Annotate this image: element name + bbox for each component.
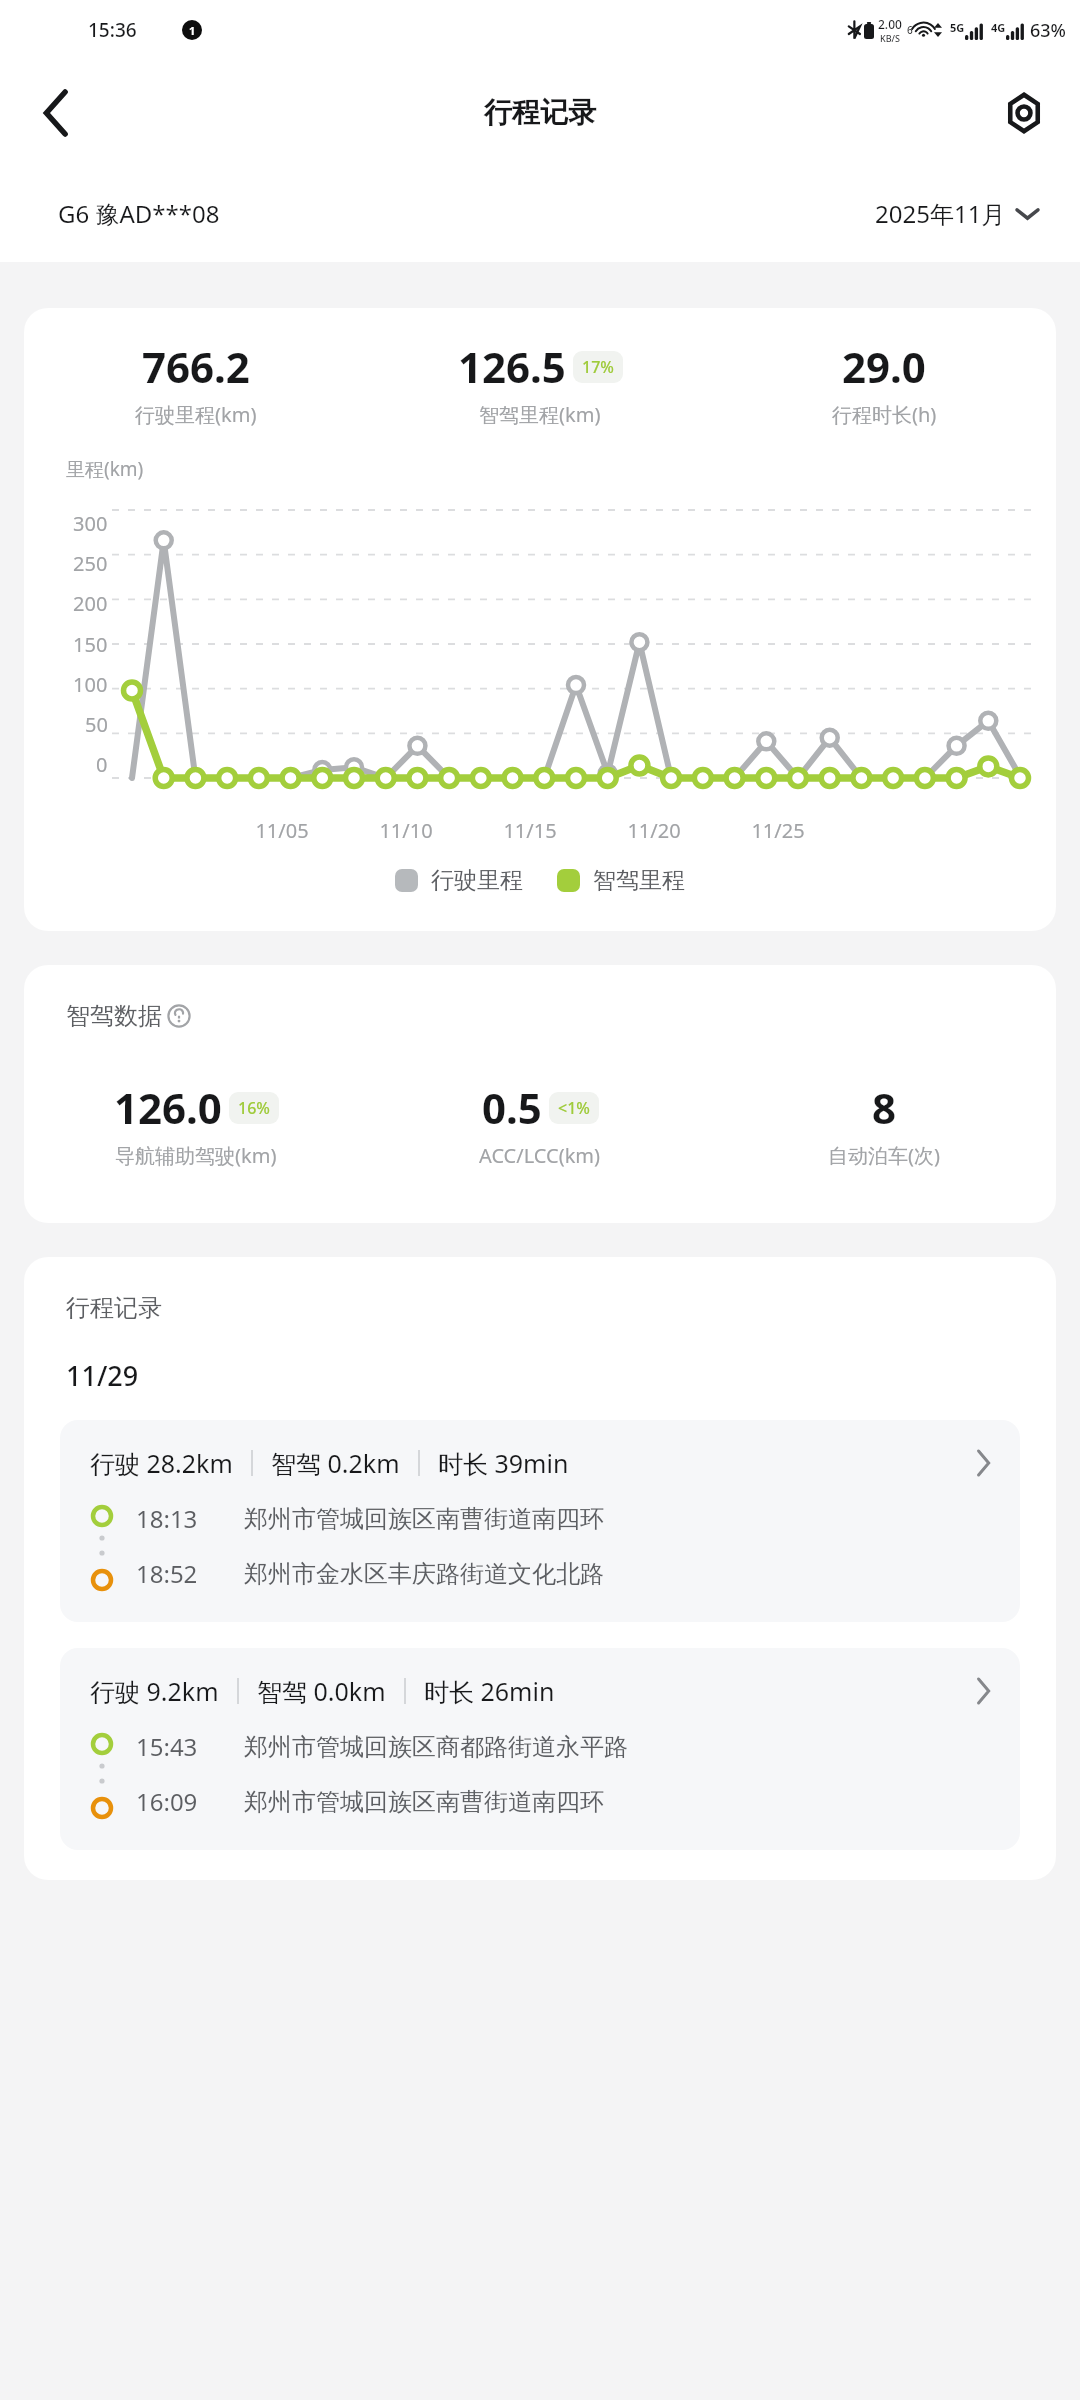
staticText: 0.5 (482, 1079, 542, 1136)
staticText: 100 (73, 671, 108, 698)
staticText: 行驶里程 (431, 866, 523, 895)
staticText: 150 (73, 631, 108, 658)
staticText: 250 (73, 550, 108, 577)
staticText: 29.0 (842, 338, 926, 395)
staticText: 50 (85, 711, 108, 738)
staticText: 8 (872, 1079, 897, 1136)
staticText: 126.0 (114, 1079, 222, 1136)
staticText: 11/05 (220, 817, 344, 844)
staticText: 11/20 (592, 817, 716, 844)
staticText: 15:43 (136, 1730, 244, 1763)
staticText: 6 (907, 23, 913, 37)
staticText: 郑州市管城回族区南曹街道南四环 (244, 1787, 604, 1817)
staticText: 4G (991, 20, 1006, 35)
staticText: 11/25 (716, 817, 840, 844)
button[interactable]: 行驶 28.2km (60, 1420, 1020, 1622)
staticText: 18:13 (136, 1502, 244, 1535)
button[interactable]: 智驾数据 (66, 1001, 191, 1031)
staticText: 2.00 (878, 16, 902, 32)
staticText: 智驾里程 (593, 866, 685, 895)
staticText: 5G (950, 20, 965, 35)
button[interactable]: 2025年11月 (875, 197, 1038, 230)
staticText: 0 (96, 751, 108, 778)
staticText: 行程记录 (484, 95, 596, 130)
button[interactable]: 智驾里程 (557, 866, 685, 895)
staticText: 行程时长(h) (832, 401, 937, 428)
staticText: G6 豫AD***08 (58, 197, 220, 230)
staticText: 行驶 28.2km (90, 1446, 233, 1480)
staticText: 16% (238, 1097, 270, 1119)
staticText: 郑州市管城回族区商都路街道永平路 (244, 1732, 628, 1762)
staticText: 16:09 (136, 1785, 244, 1818)
staticText: <1% (558, 1097, 590, 1119)
staticText: 126.5 (458, 338, 566, 395)
staticText: 200 (73, 590, 108, 617)
staticText: 1 (189, 23, 196, 38)
button[interactable]: Settings (988, 77, 1060, 149)
staticText: 智驾里程(km) (479, 401, 601, 428)
staticText: 17% (582, 356, 614, 378)
staticText: 11/29 (66, 1357, 139, 1394)
staticText: ACC/LCC(km) (479, 1142, 601, 1169)
staticText: 智驾数据 (66, 1001, 162, 1031)
staticText: 时长 39min (438, 1446, 569, 1480)
staticText: 18:52 (136, 1557, 244, 1590)
staticText: 15:36 (88, 17, 137, 43)
staticText: 行驶里程(km) (135, 401, 257, 428)
staticText: 行程记录 (66, 1293, 162, 1323)
staticText: 时长 26min (424, 1674, 555, 1708)
staticText: 智驾 0.2km (271, 1446, 400, 1480)
staticText: 11/10 (344, 817, 468, 844)
staticText: 300 (73, 510, 108, 537)
button[interactable]: 行驶里程 (395, 866, 523, 895)
staticText: 行驶 9.2km (90, 1674, 219, 1708)
staticText: 2025年11月 (875, 197, 1006, 230)
button[interactable]: Back (22, 79, 90, 147)
staticText: 766.2 (142, 338, 250, 395)
staticText: 智驾 0.0km (257, 1674, 386, 1708)
staticText: 自动泊车(次) (828, 1142, 940, 1169)
staticText: 11/15 (468, 817, 592, 844)
staticText: 郑州市管城回族区南曹街道南四环 (244, 1504, 604, 1534)
staticText: KB/S (880, 32, 900, 44)
staticText: 63% (1030, 18, 1066, 43)
staticText: 郑州市金水区丰庆路街道文化北路 (244, 1559, 604, 1589)
staticText: 导航辅助驾驶(km) (115, 1142, 277, 1169)
staticText: 里程(km) (66, 456, 144, 482)
button[interactable]: 行驶 9.2km (60, 1648, 1020, 1850)
